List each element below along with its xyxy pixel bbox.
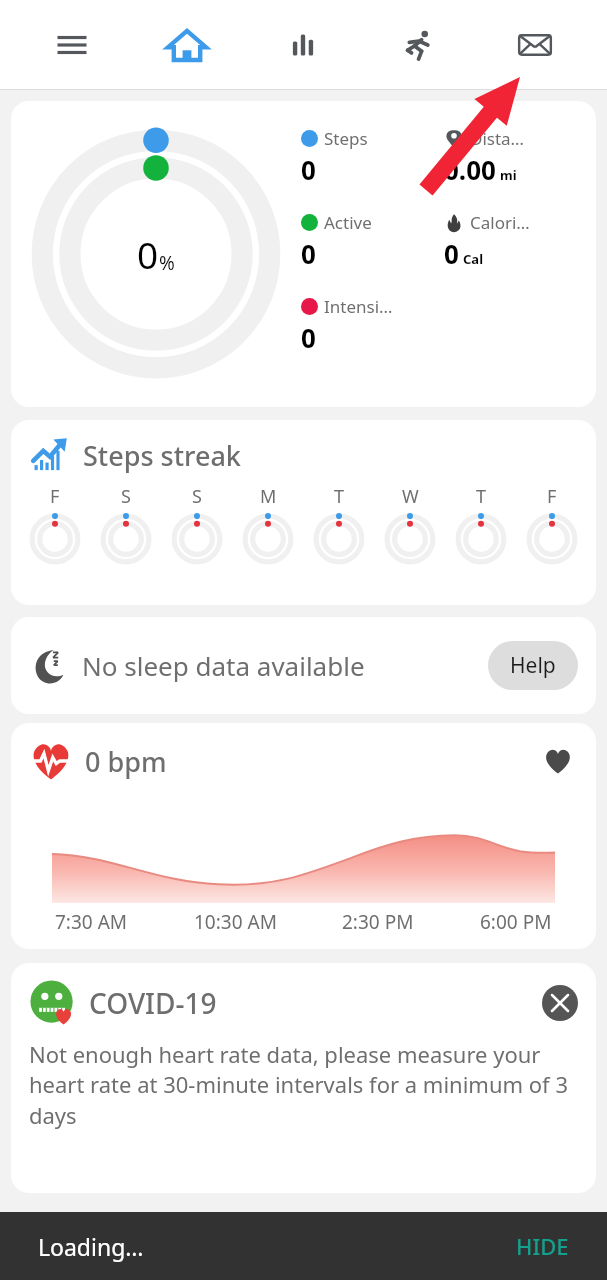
button[interactable]: HIDE — [516, 1231, 569, 1261]
staticText: T — [334, 484, 345, 509]
staticText: HIDE — [516, 1231, 569, 1261]
staticText: 0 bpm — [85, 743, 167, 780]
button[interactable]: T — [455, 484, 507, 565]
staticText: 0.00 — [444, 152, 496, 187]
staticText: 0 — [301, 152, 316, 187]
button[interactable]: Favorite — [540, 743, 576, 779]
staticText: 7:30 AM — [55, 909, 128, 935]
staticText: Intensi… — [324, 295, 393, 318]
staticText: COVID-19 — [89, 984, 217, 1022]
button[interactable]: M — [242, 484, 294, 565]
button[interactable]: Messages — [477, 0, 593, 89]
staticText: No sleep data available — [82, 648, 365, 683]
staticText: Help — [510, 651, 556, 680]
button[interactable]: Active — [301, 211, 372, 271]
staticText: 10:30 AM — [194, 909, 277, 935]
button[interactable]: Intensi… — [301, 295, 393, 355]
staticText: Calori… — [470, 211, 530, 234]
staticText: 0 — [137, 229, 159, 279]
staticText: 0 — [444, 236, 459, 271]
button[interactable]: S — [100, 484, 152, 565]
staticText: Steps streak — [83, 437, 241, 474]
button[interactable]: F — [29, 484, 81, 565]
staticText: 2:30 PM — [342, 909, 414, 935]
button[interactable]: T — [313, 484, 365, 565]
button[interactable]: F — [526, 484, 578, 565]
staticText: S — [121, 484, 131, 509]
button[interactable]: 0 — [11, 101, 596, 407]
staticText: Cal — [463, 250, 484, 268]
staticText: M — [260, 484, 277, 509]
staticText: mi — [500, 166, 517, 184]
staticText: F — [547, 484, 557, 509]
staticText: % — [159, 250, 175, 276]
staticText: Loading… — [38, 1231, 144, 1262]
button[interactable]: Menu — [14, 0, 129, 89]
button[interactable]: Home — [129, 0, 245, 89]
button[interactable]: Help — [488, 641, 578, 690]
staticText: 0 — [301, 320, 316, 355]
button[interactable]: Dismiss — [542, 985, 578, 1021]
button[interactable]: Exercise — [361, 0, 477, 89]
staticText: 0 — [301, 236, 316, 271]
staticText: 6:00 PM — [480, 909, 552, 935]
button[interactable]: W — [384, 484, 436, 565]
button[interactable]: S — [171, 484, 223, 565]
staticText: S — [192, 484, 202, 509]
staticText: Dista… — [470, 127, 525, 150]
button[interactable]: Dista… — [444, 127, 525, 187]
button[interactable]: Calori… — [444, 211, 530, 271]
button[interactable]: COVID-19 — [11, 963, 596, 1193]
staticText: Steps — [324, 127, 368, 150]
staticText: Active — [324, 211, 372, 234]
staticText: T — [476, 484, 487, 509]
staticText: F — [50, 484, 60, 509]
staticText: W — [402, 484, 419, 509]
button[interactable]: Steps streak — [11, 420, 596, 605]
button[interactable]: Steps — [301, 127, 368, 187]
button[interactable]: Statistics — [245, 0, 361, 89]
button[interactable]: No sleep data available — [11, 617, 596, 714]
button[interactable]: 0 bpm — [11, 723, 596, 949]
staticText: Not enough heart rate data, please measu… — [29, 1039, 578, 1131]
